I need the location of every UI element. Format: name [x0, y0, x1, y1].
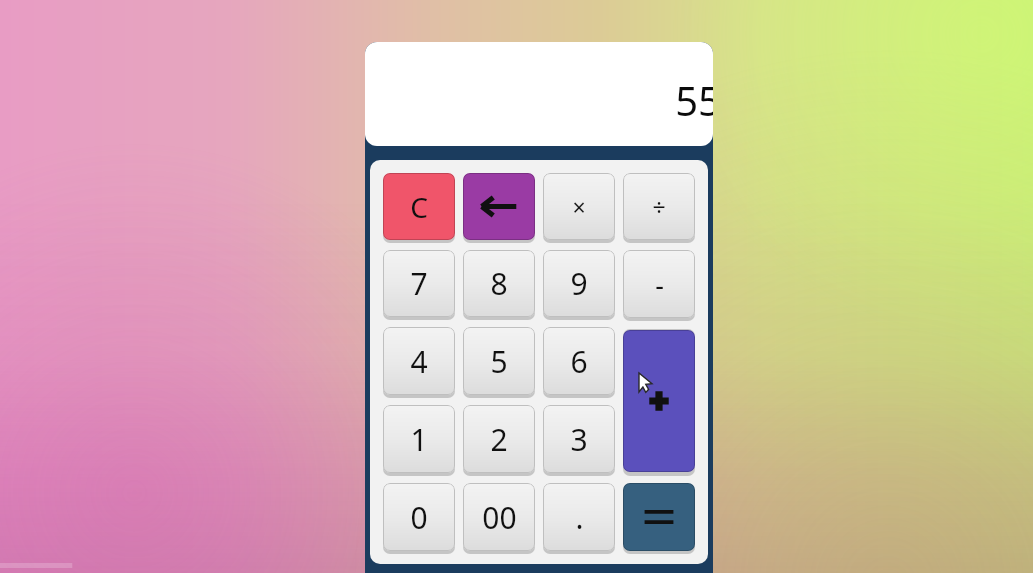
- staticText: 1: [410, 419, 428, 460]
- button[interactable]: 6: [543, 326, 615, 396]
- button[interactable]: 1: [383, 404, 455, 474]
- staticText: 4: [410, 341, 428, 382]
- button[interactable]: Plus: [623, 327, 695, 474]
- staticText: C: [410, 188, 428, 226]
- staticText: 3: [570, 419, 588, 460]
- staticText: 00: [482, 497, 517, 538]
- button[interactable]: 9: [543, 249, 615, 318]
- staticText: 55: [675, 73, 713, 127]
- staticText: ÷: [652, 191, 666, 222]
- button[interactable]: Equals: [623, 482, 695, 552]
- staticText: .: [575, 497, 584, 538]
- button[interactable]: 55: [365, 42, 713, 146]
- staticText: 8: [490, 263, 508, 304]
- button[interactable]: 3: [543, 404, 615, 474]
- button[interactable]: 5: [463, 326, 535, 396]
- staticText: 7: [410, 263, 428, 304]
- button[interactable]: ×: [543, 172, 615, 241]
- button[interactable]: 0: [383, 482, 455, 552]
- button[interactable]: C: [383, 172, 455, 241]
- staticText: 2: [490, 419, 508, 460]
- staticText: 5: [490, 341, 508, 382]
- button[interactable]: Backspace: [463, 172, 535, 241]
- button[interactable]: 00: [463, 482, 535, 552]
- button[interactable]: 2: [463, 404, 535, 474]
- button[interactable]: 7: [383, 249, 455, 318]
- button[interactable]: .: [543, 482, 615, 552]
- staticText: 9: [570, 263, 588, 304]
- button[interactable]: -: [623, 249, 695, 319]
- staticText: -: [655, 266, 664, 303]
- staticText: 6: [570, 341, 588, 382]
- button[interactable]: 4: [383, 326, 455, 396]
- button[interactable]: ÷: [623, 172, 695, 241]
- button[interactable]: 8: [463, 249, 535, 318]
- staticText: 0: [410, 497, 428, 538]
- staticText: ×: [572, 191, 586, 222]
